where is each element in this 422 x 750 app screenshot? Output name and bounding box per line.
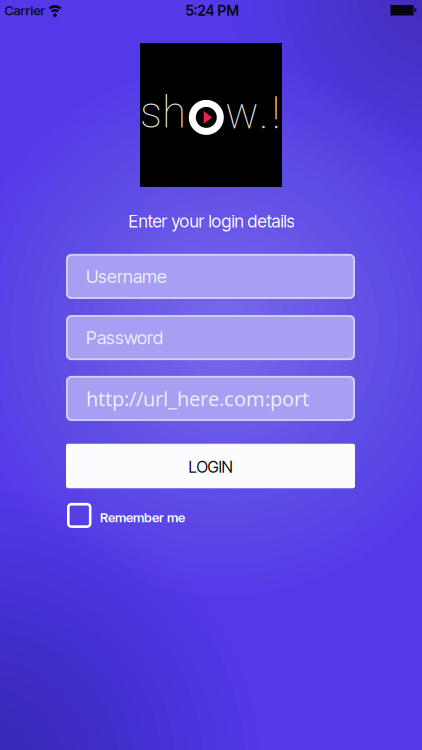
- button[interactable]: Remember me: [67, 503, 185, 528]
- staticText: LOGIN: [188, 457, 232, 477]
- staticText: sh: [140, 87, 186, 138]
- staticText: Password: [86, 327, 163, 348]
- staticText: w.!: [225, 87, 281, 139]
- staticText: http://url_here.com:port: [86, 385, 309, 412]
- button[interactable]: LOGIN: [66, 444, 355, 488]
- staticText: Enter your login details: [128, 211, 294, 232]
- staticText: 5:24 PM: [185, 2, 238, 19]
- staticText: Remember me: [100, 509, 185, 525]
- button[interactable]: Username: [66, 254, 355, 299]
- staticText: Carrier: [4, 2, 45, 18]
- staticText: Username: [86, 265, 167, 287]
- button[interactable]: http://url_here.com:port: [66, 376, 355, 421]
- button[interactable]: Password: [66, 315, 355, 360]
